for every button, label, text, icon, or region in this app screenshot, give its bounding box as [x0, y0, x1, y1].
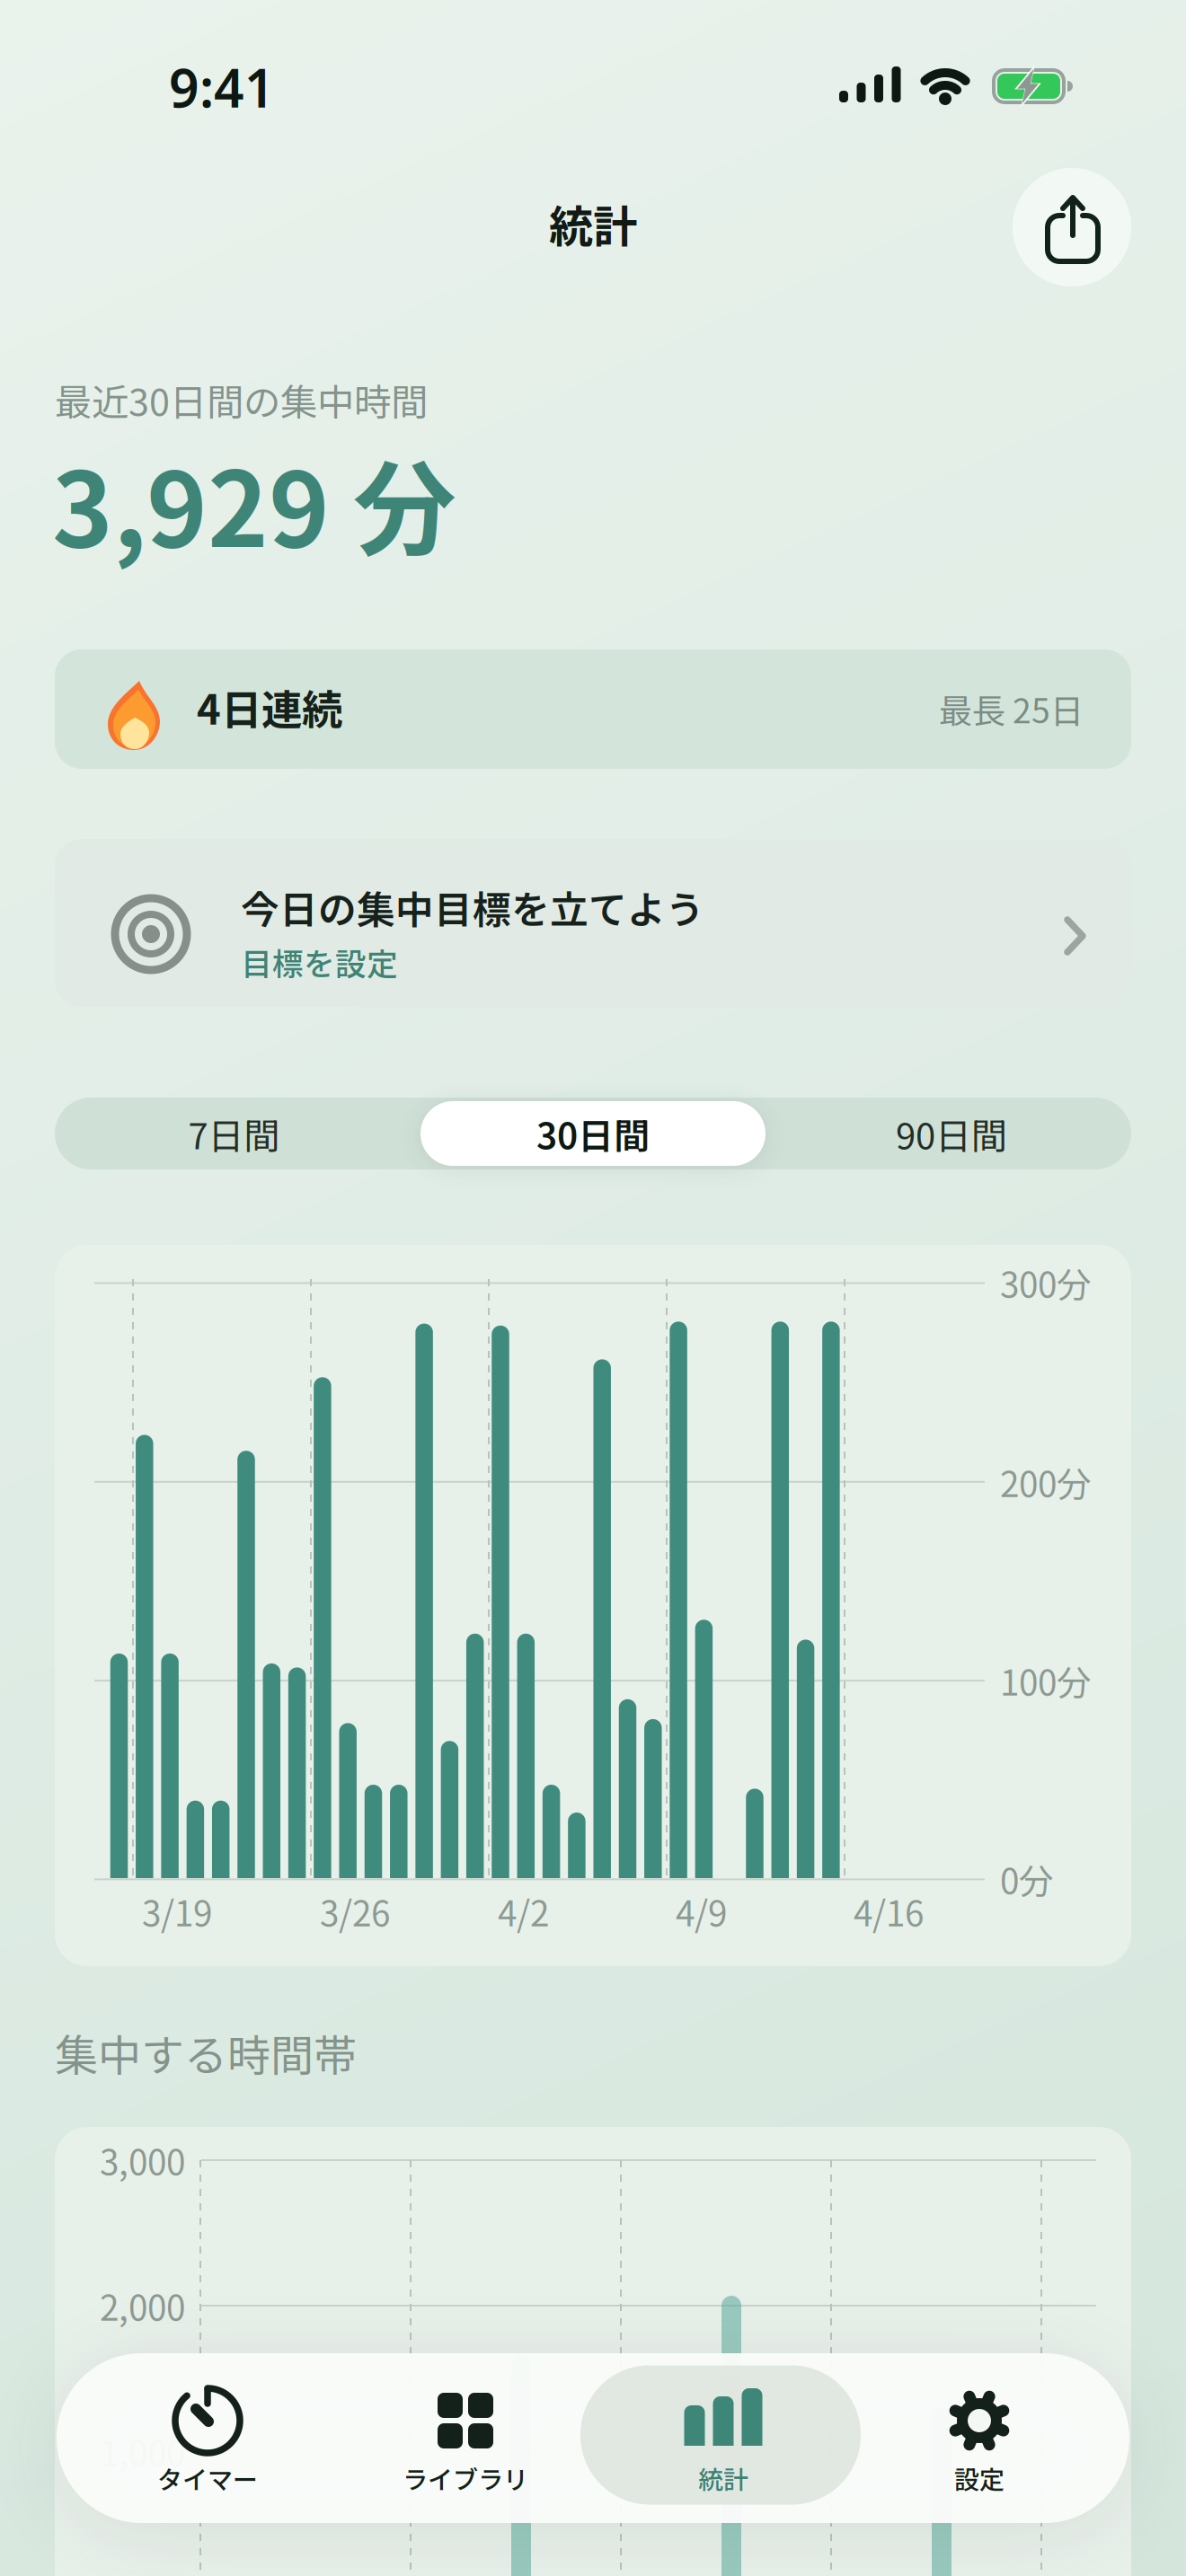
staticText: 100分 [1000, 1655, 1092, 1706]
button[interactable]: 今日の集中目標を立てよう [55, 839, 1131, 1007]
staticText: 200分 [1000, 1457, 1092, 1507]
staticText: 最長 25日 [939, 684, 1084, 733]
button[interactable]: 30日間 [414, 1098, 772, 1169]
staticText: 3/26 [320, 1886, 390, 1936]
staticText: 90日間 [896, 1107, 1007, 1159]
staticText: 1,000 [100, 2426, 185, 2476]
staticText: 7日間 [188, 1107, 280, 1159]
staticText: 集中する時間帯 [55, 2021, 357, 2084]
staticText: 4日連続 [197, 677, 342, 736]
button[interactable]: タイマー [82, 2355, 333, 2521]
staticText: 300分 [1000, 1257, 1092, 1308]
button[interactable]: ライブラリ [340, 2355, 591, 2521]
staticText: 4/2 [498, 1886, 549, 1936]
staticText: 最近30日間の集中時間 [55, 373, 428, 427]
staticText: 3,000 [100, 2135, 185, 2185]
staticText: 統計 [698, 2460, 748, 2496]
staticText: 30日間 [536, 1107, 650, 1159]
button[interactable]: 統計 [597, 2355, 849, 2521]
staticText: 統計 [549, 192, 637, 256]
staticText: 3,929 分 [52, 428, 456, 577]
staticText: 今日の集中目標を立てよう [241, 879, 704, 935]
staticText: 9:41 [169, 52, 275, 122]
staticText: 2,000 [100, 2280, 185, 2331]
button[interactable]: Share [1013, 168, 1131, 287]
staticText: 3/19 [142, 1886, 212, 1936]
button[interactable]: 90日間 [772, 1098, 1131, 1169]
staticText: 4/16 [854, 1886, 924, 1936]
staticText: タイマー [157, 2460, 258, 2496]
staticText: 4/9 [676, 1886, 727, 1936]
staticText: 0分 [1000, 1854, 1054, 1904]
staticText: ライブラリ [403, 2460, 528, 2496]
staticText: 目標を設定 [241, 939, 398, 985]
button[interactable]: 7日間 [55, 1098, 413, 1169]
staticText: 設定 [954, 2460, 1005, 2496]
button[interactable]: 設定 [854, 2355, 1105, 2521]
